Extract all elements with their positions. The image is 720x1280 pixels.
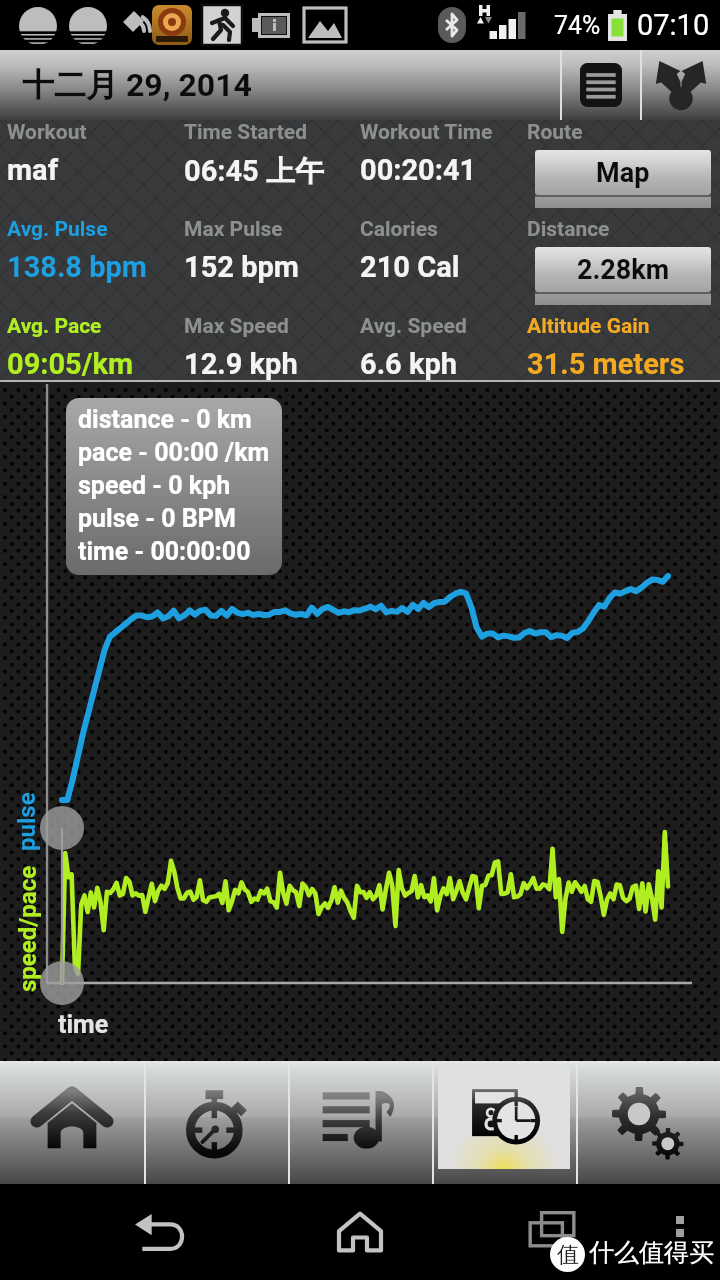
button[interactable]: List view	[562, 50, 640, 120]
staticText: Workout	[7, 120, 87, 145]
staticText: Altitude Gain	[527, 314, 650, 339]
staticText: speed - 0 kph	[78, 471, 231, 500]
staticText: speed/pace	[14, 865, 42, 992]
staticText: 138.8 bpm	[7, 250, 147, 284]
staticText: pulse - 0 BPM	[78, 504, 236, 533]
staticText: time - 00:00:00	[78, 537, 251, 566]
staticText: Avg. Pulse	[7, 217, 108, 242]
staticText: 值	[557, 1241, 579, 1269]
staticText: 十二月 29, 2014	[22, 65, 252, 105]
staticText: pulse	[13, 792, 41, 851]
button[interactable]: Stopwatch	[144, 1061, 288, 1184]
staticText: pace - 00:00 /km	[78, 438, 270, 467]
staticText: 210 Cal	[360, 250, 460, 284]
staticText: Max Speed	[184, 314, 289, 339]
button[interactable]: Recent apps	[512, 1184, 592, 1280]
button[interactable]: Settings	[576, 1061, 720, 1184]
staticText: Route	[527, 120, 583, 145]
staticText: 6.6 kph	[360, 347, 457, 380]
button[interactable]: History	[432, 1061, 576, 1184]
staticText: Avg. Speed	[360, 314, 467, 339]
staticText: 31.5 meters	[527, 347, 685, 380]
staticText: Max Pulse	[184, 217, 283, 242]
button[interactable]: 2.28km	[535, 247, 711, 305]
staticText: 152 bpm	[184, 250, 299, 284]
button[interactable]: Map	[535, 150, 711, 208]
staticText: Map	[596, 157, 650, 189]
button[interactable]: Home	[320, 1184, 400, 1280]
staticText: 什么值得买	[589, 1237, 714, 1268]
staticText: Workout Time	[360, 120, 493, 145]
button[interactable]: Back	[120, 1184, 200, 1280]
staticText: 12.9 kph	[184, 347, 298, 380]
staticText: Distance	[527, 217, 610, 242]
staticText: Calories	[360, 217, 438, 242]
button[interactable]: Home	[0, 1061, 144, 1184]
staticText: 07:10	[637, 8, 710, 42]
staticText: distance - 0 km	[78, 405, 252, 434]
staticText: 00:20:41	[360, 153, 477, 187]
staticText: Avg. Pace	[7, 314, 102, 339]
staticText: Time Started	[184, 120, 308, 145]
staticText: 06:45 上午	[184, 153, 324, 190]
staticText: 2.28km	[577, 254, 670, 286]
staticText: time	[58, 1010, 109, 1039]
staticText: 74%	[554, 11, 601, 40]
staticText: maf	[7, 153, 59, 187]
staticText: 09:05/km	[7, 347, 134, 380]
button[interactable]: Music	[288, 1061, 432, 1184]
button[interactable]: Share	[642, 50, 720, 120]
